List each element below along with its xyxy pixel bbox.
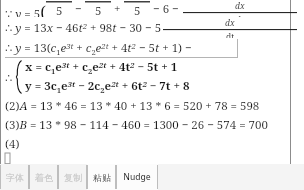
button[interactable]: Nudge xyxy=(116,164,158,190)
button[interactable]: 着色 xyxy=(29,164,58,190)
staticText: dt xyxy=(226,31,235,38)
staticText: ∵ y = 5( xyxy=(5,0,46,17)
staticText: x = c1e3t + c2e2t + 4t2 − 5t + 1 xyxy=(25,59,178,76)
staticText: ∴ y = 13(c1e3t + c2e2t + 4t2 − 5t + 1) − xyxy=(5,40,192,57)
button[interactable]: 复制 xyxy=(58,164,87,190)
staticText: − 6 − xyxy=(150,1,182,17)
staticText: (3)B = 13 * 98 − 114 − 460 = 1300 − 26 −… xyxy=(5,117,268,133)
staticText: 字体 xyxy=(6,172,24,183)
staticText: 5 xyxy=(56,3,63,17)
staticText: 复制 xyxy=(64,172,82,183)
button[interactable]: 粘贴 xyxy=(87,164,116,190)
staticText: 粘贴 xyxy=(93,172,111,183)
staticText: 5 xyxy=(134,3,141,17)
staticText: 着色 xyxy=(35,172,53,183)
staticText: ∴ y = 13x − 46t2 + 98t − 30 − 5 xyxy=(5,20,162,36)
staticText: ∴ xyxy=(5,71,13,84)
staticText: + xyxy=(111,1,124,17)
staticText: dt xyxy=(236,14,245,17)
staticText: dx xyxy=(235,0,245,12)
staticText: dx xyxy=(225,17,235,29)
staticText: − xyxy=(72,1,85,17)
staticText: Nudge xyxy=(123,171,151,183)
staticText: y = 3c1e3t − 2c2e2t + 6t2 − 7t + 8 xyxy=(25,78,190,95)
button[interactable]: 字体 xyxy=(0,164,29,190)
staticText: 5 xyxy=(95,3,102,17)
staticText: (2)A = 13 * 46 = 13 * 40 + 13 * 6 = 520 … xyxy=(5,98,260,114)
staticText: (4) xyxy=(5,136,20,152)
